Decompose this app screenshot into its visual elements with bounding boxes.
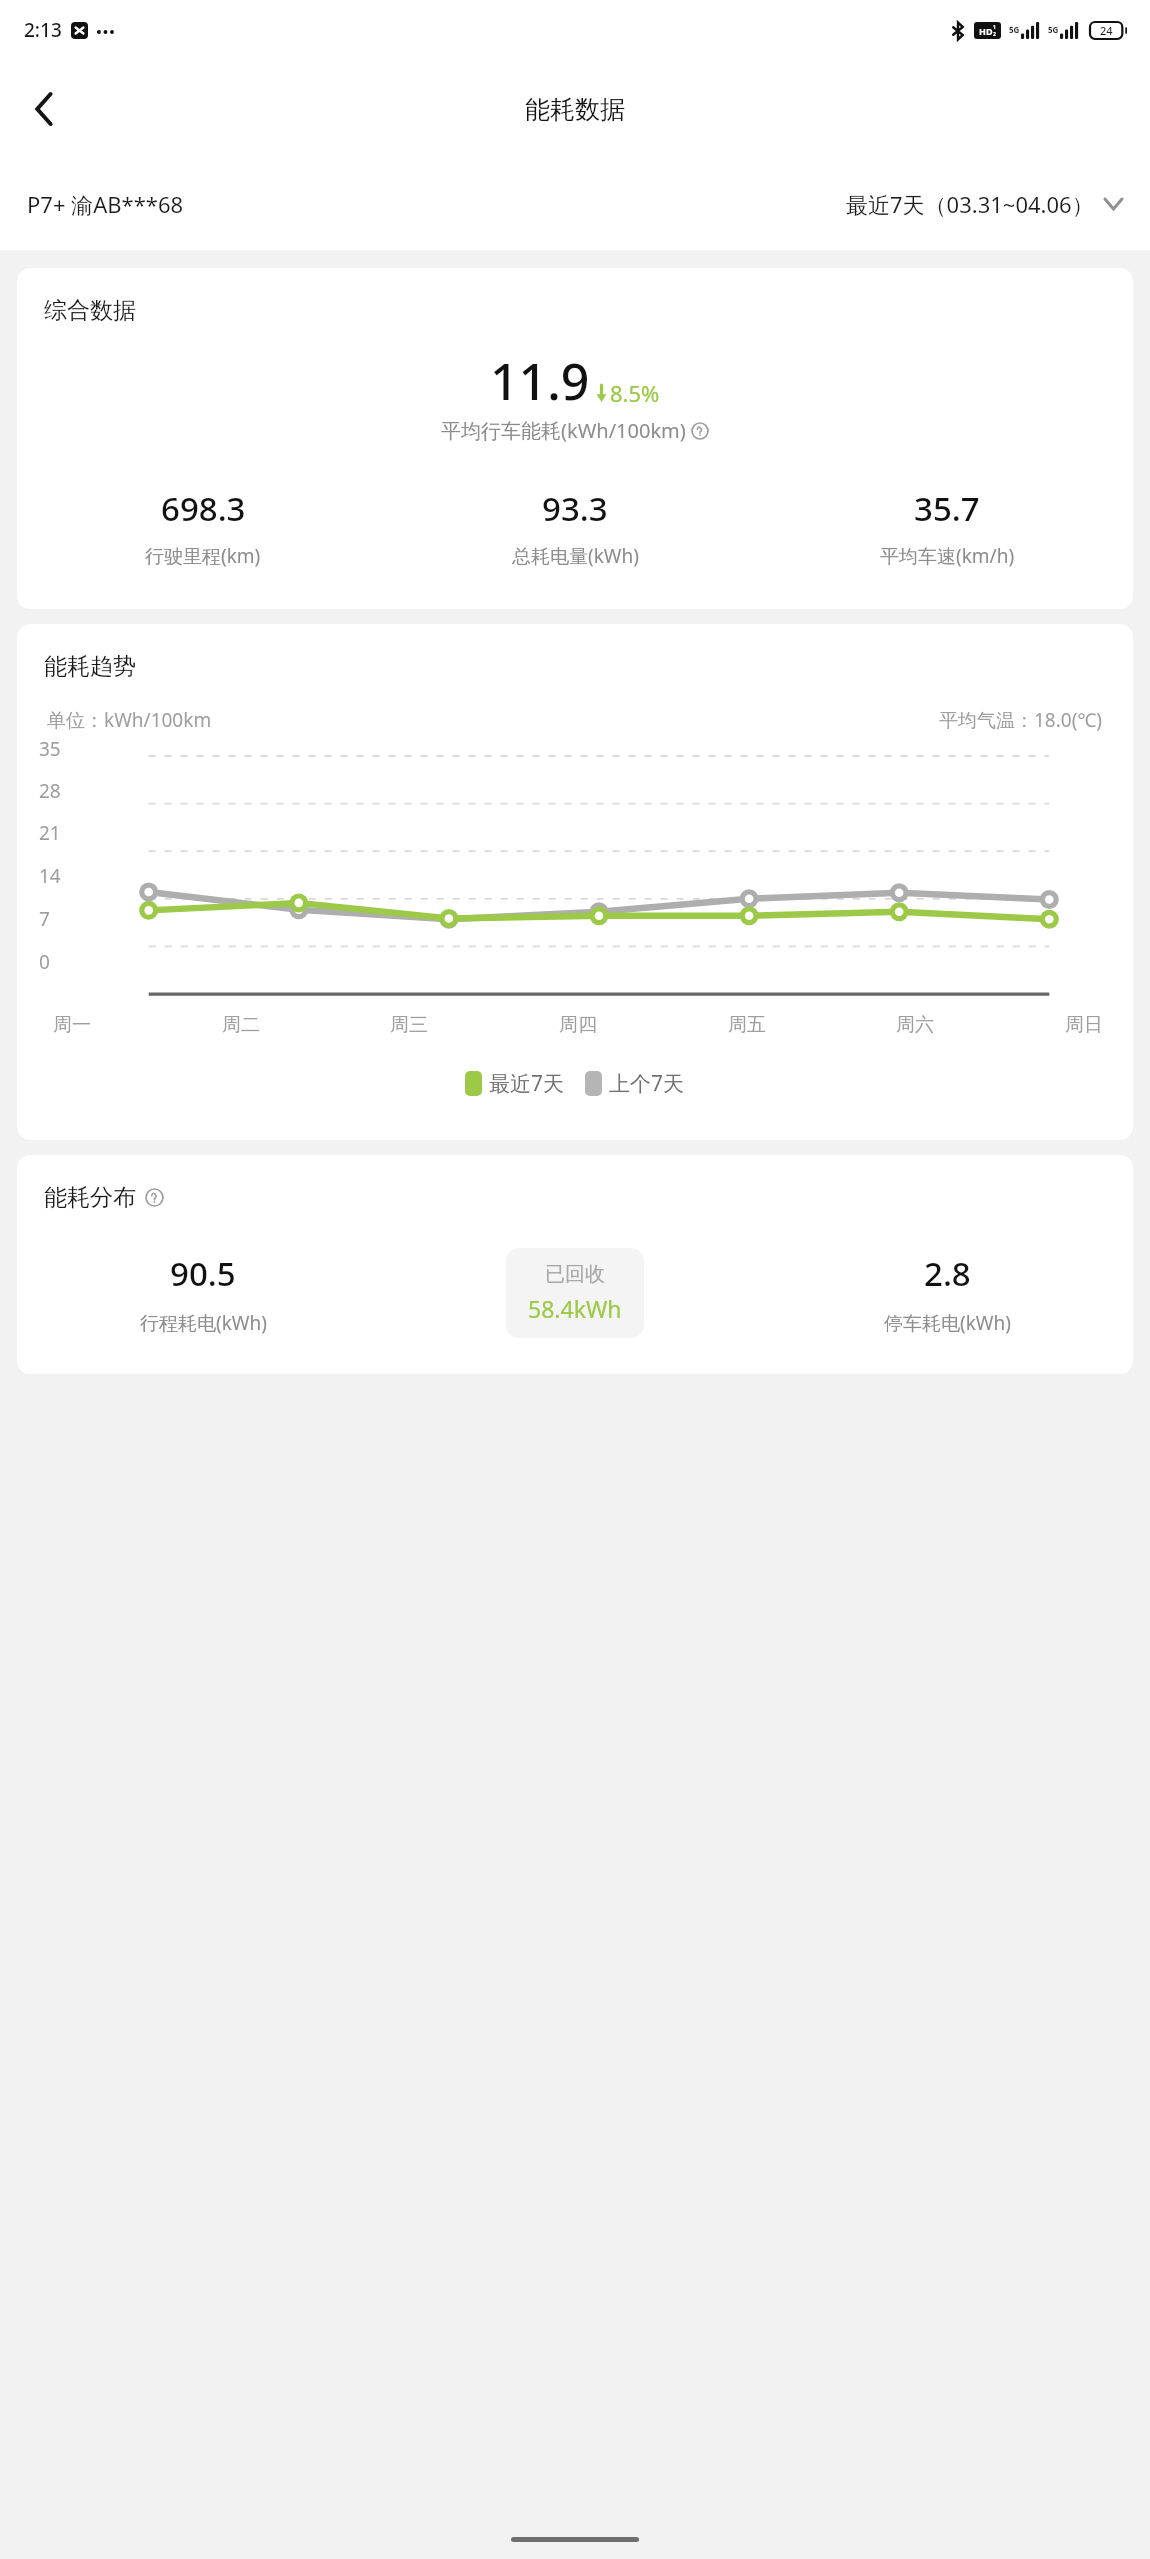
staticText: 单位：kWh/100km bbox=[47, 707, 212, 733]
staticText: 最近7天 bbox=[489, 1069, 565, 1098]
staticText: 90.5 bbox=[170, 1251, 236, 1296]
staticText: 周三 bbox=[390, 1013, 428, 1037]
staticText: P7+ 渝AB***68 bbox=[27, 189, 184, 219]
button[interactable]: Back bbox=[8, 73, 80, 145]
staticText: 已回收 bbox=[545, 1262, 605, 1287]
staticText: 最近7天（03.31~04.06） bbox=[846, 189, 1094, 219]
staticText: 21 bbox=[39, 820, 61, 846]
staticText: 行程耗电(kWh) bbox=[140, 1310, 267, 1336]
button[interactable]: 最近7天（03.31~04.06） bbox=[846, 181, 1123, 227]
staticText: 平均气温：18.0(℃) bbox=[939, 707, 1103, 733]
staticText: 5G bbox=[1048, 24, 1059, 35]
staticText: 58.4kWh bbox=[528, 1293, 622, 1324]
staticText: 总耗电量(kWh) bbox=[512, 543, 639, 569]
staticText: 5G bbox=[1009, 24, 1020, 35]
staticText: 停车耗电(kWh) bbox=[884, 1310, 1011, 1336]
button[interactable]: P7+ 渝AB***68 bbox=[27, 181, 184, 227]
staticText: 14 bbox=[39, 863, 61, 889]
staticText: 上个7天 bbox=[609, 1069, 685, 1098]
staticText: 能耗趋势 bbox=[44, 652, 136, 681]
staticText: 能耗分布 bbox=[44, 1183, 136, 1212]
button[interactable]: 最近7天 bbox=[465, 1069, 565, 1098]
staticText: 行驶里程(km) bbox=[145, 543, 261, 569]
staticText: 平均车速(km/h) bbox=[880, 543, 1015, 569]
staticText: 平均行车能耗(kWh/100km) bbox=[441, 417, 686, 444]
staticText: 2:13 bbox=[24, 17, 62, 43]
staticText: 能耗数据 bbox=[525, 94, 625, 125]
button[interactable]: 上个7天 bbox=[585, 1069, 685, 1098]
staticText: 周四 bbox=[559, 1013, 597, 1037]
staticText: 93.3 bbox=[542, 486, 608, 531]
button[interactable]: 已回收 bbox=[506, 1248, 644, 1338]
staticText: 35 bbox=[39, 736, 61, 762]
staticText: 1 bbox=[993, 24, 996, 31]
staticText: 28 bbox=[39, 778, 61, 804]
staticText: 综合数据 bbox=[44, 296, 136, 325]
staticText: 周五 bbox=[728, 1013, 766, 1037]
staticText: 周二 bbox=[222, 1013, 260, 1037]
staticText: 2 bbox=[993, 31, 996, 38]
staticText: 7 bbox=[39, 906, 50, 932]
staticText: 周一 bbox=[53, 1013, 91, 1037]
staticText: 周日 bbox=[1065, 1013, 1103, 1037]
staticText: HD bbox=[979, 25, 993, 37]
staticText: 0 bbox=[39, 949, 50, 975]
staticText: 698.3 bbox=[161, 486, 246, 531]
staticText: 2.8 bbox=[924, 1251, 971, 1296]
staticText: 35.7 bbox=[914, 486, 980, 531]
staticText: 11.9 bbox=[490, 347, 590, 415]
staticText: 8.5% bbox=[610, 378, 660, 408]
staticText: 周六 bbox=[896, 1013, 934, 1037]
staticText: 24 bbox=[1100, 23, 1113, 38]
